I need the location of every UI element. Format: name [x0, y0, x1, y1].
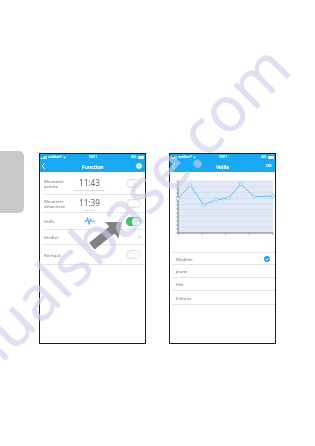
staticText: Vérifier [44, 234, 59, 240]
button[interactable]: Minuterie désactivée [39, 195, 146, 212]
staticText: 11:39 [79, 197, 100, 208]
button[interactable]: Toggle off [126, 199, 141, 208]
button[interactable]: Back [42, 163, 45, 169]
staticText: Enfants [176, 295, 192, 301]
staticText: Lun Mar Mer Jeu Ven Sam [74, 188, 105, 191]
staticText: Function [82, 163, 104, 170]
button[interactable]: jeune [169, 265, 276, 277]
button[interactable]: Toggle off [126, 179, 141, 188]
staticText: Veille [216, 163, 230, 170]
button[interactable]: Enfants [169, 291, 276, 304]
staticText: Veille [44, 218, 55, 224]
staticText: vodafone F [178, 155, 192, 159]
staticText: Modifier [176, 256, 194, 262]
button[interactable]: Back [172, 163, 175, 169]
button[interactable]: Toggle off [126, 250, 141, 259]
staticText: 10:51 [219, 155, 227, 159]
button[interactable]: Vérifier [39, 230, 146, 244]
staticText: jeune [176, 268, 188, 274]
button[interactable]: Modifier [169, 253, 276, 264]
staticText: 44% [261, 155, 267, 159]
button[interactable]: Réchauf. [39, 245, 146, 264]
staticText: Khé [176, 281, 184, 287]
staticText: 44% [131, 155, 137, 159]
staticText: Minuterie désactivée [44, 198, 68, 209]
staticText: Réchauf. [44, 252, 62, 258]
button[interactable]: Minuterie activée [39, 173, 146, 194]
staticText: Lun Mar [85, 208, 95, 211]
button[interactable]: Khé [169, 278, 276, 290]
staticText: 10:51 [89, 155, 97, 159]
staticText: 11:43 [79, 177, 100, 188]
button[interactable]: Veille [39, 213, 146, 229]
other: Selected [264, 256, 270, 262]
staticText: Minuterie activée [44, 178, 68, 189]
staticText: vodafone F [48, 155, 62, 159]
button[interactable]: Veille toggle on [126, 217, 141, 226]
button[interactable]: OK [266, 163, 272, 169]
button[interactable]: Settings [136, 163, 142, 169]
